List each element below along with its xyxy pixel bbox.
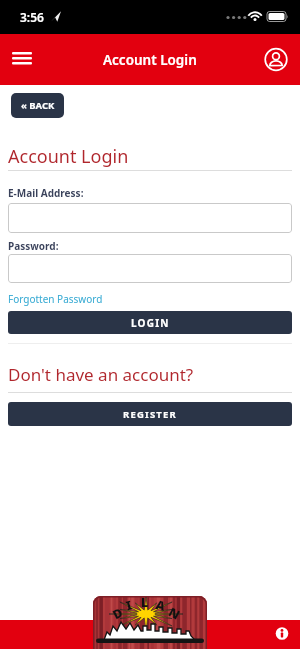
button[interactable] — [8, 254, 292, 283]
button[interactable] — [263, 47, 289, 72]
staticText: Don't have an account? — [8, 363, 194, 386]
button[interactable]: Forgotten Password — [8, 292, 103, 306]
staticText: « BACK — [21, 99, 55, 112]
staticText: I — [124, 596, 134, 614]
button[interactable] — [8, 46, 36, 71]
button[interactable] — [8, 203, 292, 233]
staticText: E-Mail Address: — [8, 186, 84, 200]
staticText: Account Login — [103, 51, 197, 69]
button[interactable]: REGISTER — [8, 402, 292, 426]
staticText: LOGIN — [131, 316, 170, 330]
staticText: N — [166, 603, 183, 624]
staticText: L — [141, 596, 149, 611]
staticText: D — [110, 604, 126, 623]
staticText: 3:56 — [20, 9, 44, 25]
staticText: REGISTER — [123, 408, 177, 421]
staticText: Forgotten Password — [8, 292, 103, 306]
button[interactable]: « BACK — [11, 93, 64, 118]
button[interactable]: LOGIN — [8, 311, 292, 334]
staticText: Password: — [8, 239, 59, 253]
button[interactable] — [272, 624, 293, 645]
button[interactable]: D — [93, 596, 207, 649]
staticText: Account Login — [8, 144, 129, 169]
staticText: A — [154, 596, 168, 615]
